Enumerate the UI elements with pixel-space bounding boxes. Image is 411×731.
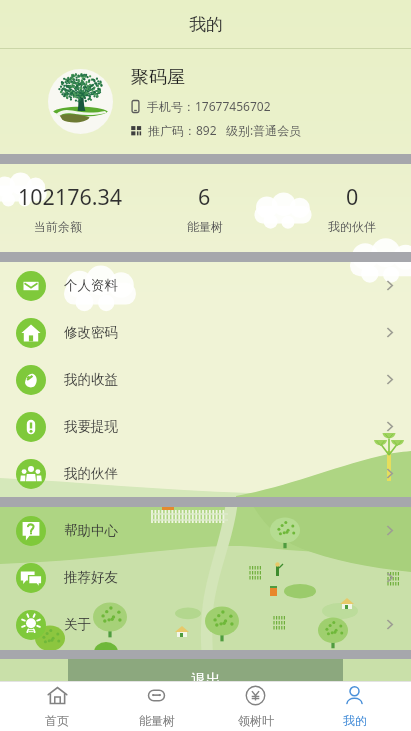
button[interactable]: 个人资料 xyxy=(0,262,411,309)
staticText: 能量树 xyxy=(187,219,223,234)
button[interactable]: 关于 xyxy=(0,601,411,648)
staticText: 能量树 xyxy=(139,713,175,728)
staticText: 首页 xyxy=(45,713,69,728)
button[interactable]: 我的伙伴 xyxy=(0,450,411,497)
staticText: 我的 xyxy=(189,14,223,35)
staticText: 个人资料 xyxy=(64,277,118,294)
staticText: 修改密码 xyxy=(64,324,118,341)
staticText: 退出 xyxy=(191,671,221,690)
staticText: 推荐好友 xyxy=(64,569,118,586)
button[interactable]: 修改密码 xyxy=(0,309,411,356)
button[interactable]: 领树叶 xyxy=(206,681,305,731)
staticText: 0 xyxy=(346,182,359,211)
staticText: 我要提现 xyxy=(64,418,118,435)
staticText: 聚码屋 xyxy=(131,66,185,89)
button[interactable]: 聚码屋 xyxy=(0,49,411,154)
button[interactable]: 能量树 xyxy=(107,681,206,731)
button[interactable]: 0 xyxy=(293,164,411,252)
staticText: 6 xyxy=(198,182,211,211)
button[interactable]: 首页 xyxy=(7,681,107,731)
button[interactable]: 6 xyxy=(116,164,293,252)
staticText: 领树叶 xyxy=(238,713,274,728)
staticText: 关于 xyxy=(64,616,91,633)
staticText: 我的 xyxy=(343,713,367,728)
button[interactable]: 我要提现 xyxy=(0,403,411,450)
staticText: 我的伙伴 xyxy=(328,219,376,234)
button[interactable]: 我的 xyxy=(305,681,404,731)
button[interactable]: 帮助中心 xyxy=(0,507,411,554)
staticText: 手机号：17677456702 xyxy=(147,98,271,114)
button[interactable]: 推荐好友 xyxy=(0,554,411,601)
staticText: 帮助中心 xyxy=(64,522,118,539)
button[interactable]: 我的收益 xyxy=(0,356,411,403)
staticText: 推广码：892 级别:普通会员 xyxy=(148,122,302,138)
staticText: 102176.34 xyxy=(18,182,123,211)
button[interactable]: 102176.34 xyxy=(0,164,116,252)
button[interactable]: 退出 xyxy=(68,659,343,701)
staticText: 我的伙伴 xyxy=(64,465,118,482)
staticText: 当前余额 xyxy=(34,219,82,234)
staticText: 我的收益 xyxy=(64,371,118,388)
